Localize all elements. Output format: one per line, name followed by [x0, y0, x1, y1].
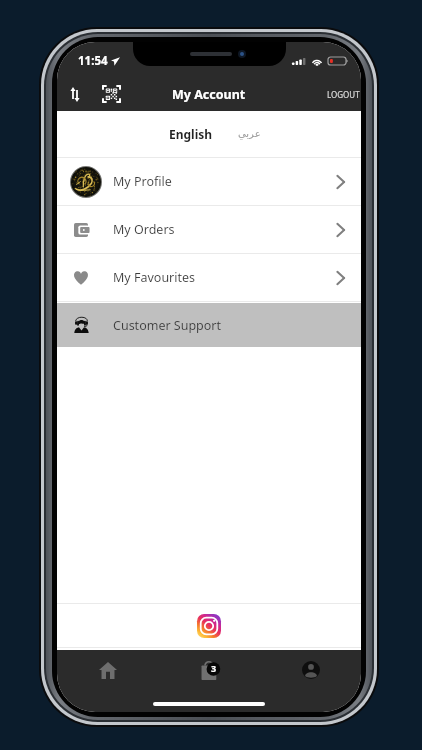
button[interactable]: My Orders: [57, 206, 361, 253]
button[interactable]: عربي: [230, 121, 269, 147]
button[interactable]: Cart, 3 items: [159, 657, 260, 683]
staticText: Customer Support: [113, 317, 222, 334]
button[interactable]: Sort: [62, 81, 88, 107]
button[interactable]: Customer Support: [57, 303, 361, 347]
staticText: My Profile: [113, 173, 172, 190]
staticText: English: [169, 126, 213, 142]
button[interactable]: Instagram: [197, 614, 221, 638]
button[interactable]: English: [161, 119, 221, 149]
button[interactable]: Account: [260, 657, 361, 683]
button[interactable]: Scan QR code: [98, 81, 124, 107]
staticText: 3: [211, 662, 217, 674]
staticText: My Favourites: [113, 269, 196, 286]
button[interactable]: Home: [57, 657, 159, 683]
staticText: 11:54: [78, 53, 108, 69]
staticText: عربي: [238, 128, 261, 140]
staticText: My Account: [172, 86, 246, 103]
button[interactable]: My Profile: [57, 158, 361, 205]
button[interactable]: LOGOUT: [321, 83, 361, 106]
button[interactable]: My Favourites: [57, 254, 361, 301]
staticText: My Orders: [113, 221, 175, 238]
staticText: LOGOUT: [327, 89, 360, 100]
